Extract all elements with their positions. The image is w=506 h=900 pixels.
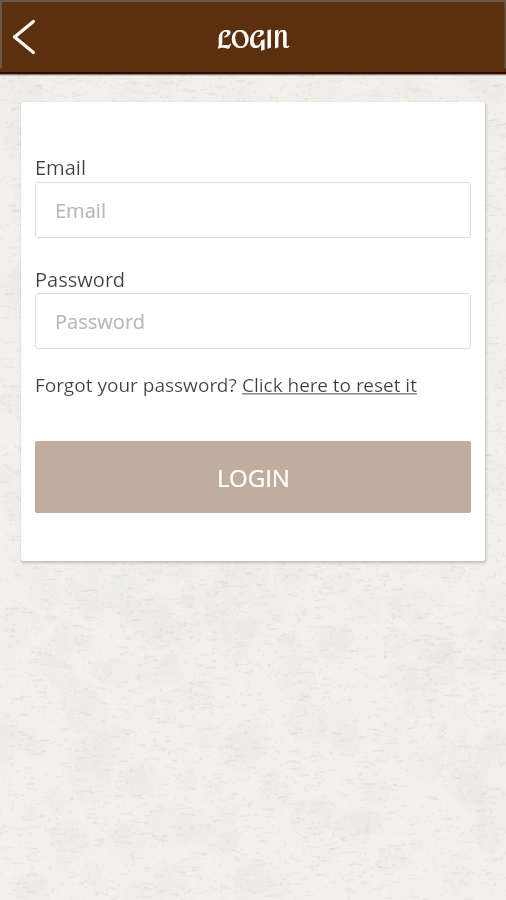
- button[interactable]: Navigate back: [0, 12, 48, 60]
- staticText: Password: [35, 266, 125, 293]
- button[interactable]: Password: [35, 293, 471, 349]
- staticText: Forgot your password?: [35, 372, 242, 398]
- staticText: LOGIN: [217, 461, 290, 494]
- button[interactable]: Email: [35, 182, 471, 238]
- staticText: Click here to reset it: [242, 372, 417, 398]
- staticText: Email: [35, 154, 86, 181]
- button[interactable]: Click here to reset it: [242, 372, 417, 398]
- button[interactable]: LOGIN: [35, 441, 471, 513]
- staticText: Email: [55, 197, 106, 224]
- staticText: Password: [55, 308, 145, 335]
- staticText: LOGIN: [217, 16, 289, 65]
